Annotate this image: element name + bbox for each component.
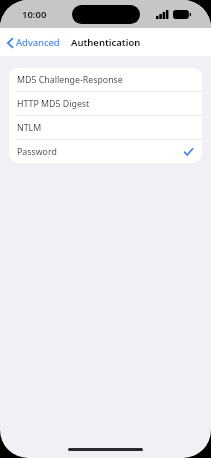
button[interactable]: Back [0, 32, 66, 53]
other: Back [7, 38, 13, 48]
staticText: Password [17, 146, 57, 158]
button[interactable]: HTTP MD5 Digest [9, 92, 202, 115]
staticText: NTLM [17, 122, 42, 134]
button[interactable]: MD5 Challenge-Response [9, 68, 202, 91]
staticText: MD5 Challenge-Response [17, 74, 123, 86]
staticText: Authentication [71, 36, 141, 49]
button[interactable]: Password [9, 140, 202, 163]
staticText: HTTP MD5 Digest [17, 98, 90, 110]
other: Selected [184, 148, 193, 156]
staticText: 10:00 [22, 8, 47, 21]
staticText: Advanced [16, 36, 60, 49]
button[interactable]: NTLM [9, 116, 202, 139]
